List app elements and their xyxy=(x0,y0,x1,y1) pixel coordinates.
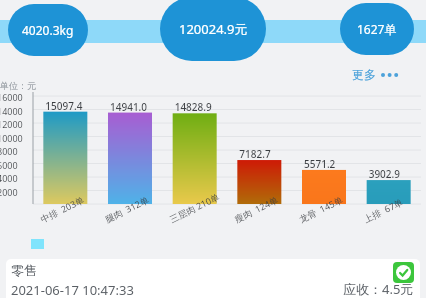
staticText: 120024.9元 xyxy=(179,20,248,38)
button[interactable]: 4020.3kg xyxy=(8,4,88,56)
button[interactable]: 1627单 xyxy=(340,3,414,55)
staticText: 应收：4.5元 xyxy=(343,280,414,298)
staticText: 零售 xyxy=(11,262,37,278)
button[interactable]: 零售 xyxy=(6,259,420,298)
button[interactable]: 120024.9元 xyxy=(160,0,266,61)
button[interactable]: 更多 xyxy=(348,64,405,85)
staticText: 4020.3kg xyxy=(22,22,74,38)
staticText: 更多 xyxy=(352,67,376,82)
staticText: 2021-06-17 10:47:33 xyxy=(11,281,134,298)
staticText: 1627单 xyxy=(357,21,397,37)
button[interactable]: 订单已完成 xyxy=(393,262,414,283)
